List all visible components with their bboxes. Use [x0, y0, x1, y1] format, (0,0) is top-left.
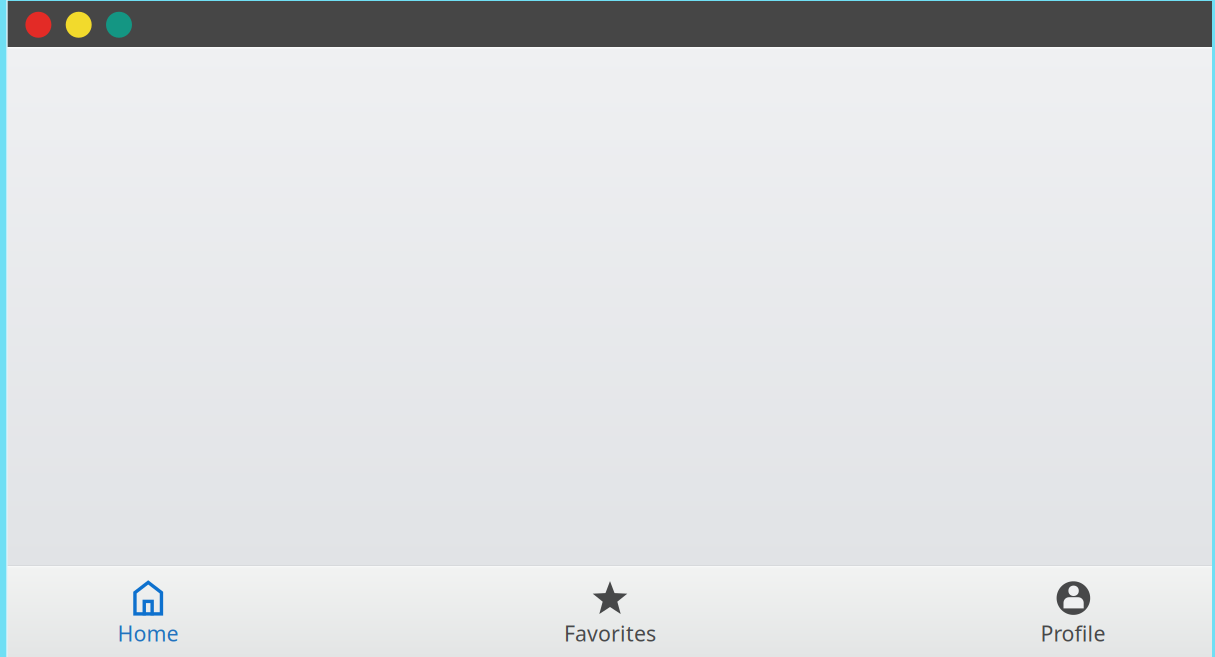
staticText: Favorites: [564, 619, 656, 647]
button[interactable]: Home: [48, 566, 248, 657]
button[interactable]: Profile: [973, 566, 1173, 657]
button[interactable]: Favorites: [510, 566, 710, 657]
staticText: Profile: [1040, 619, 1105, 647]
staticText: Home: [117, 619, 178, 647]
